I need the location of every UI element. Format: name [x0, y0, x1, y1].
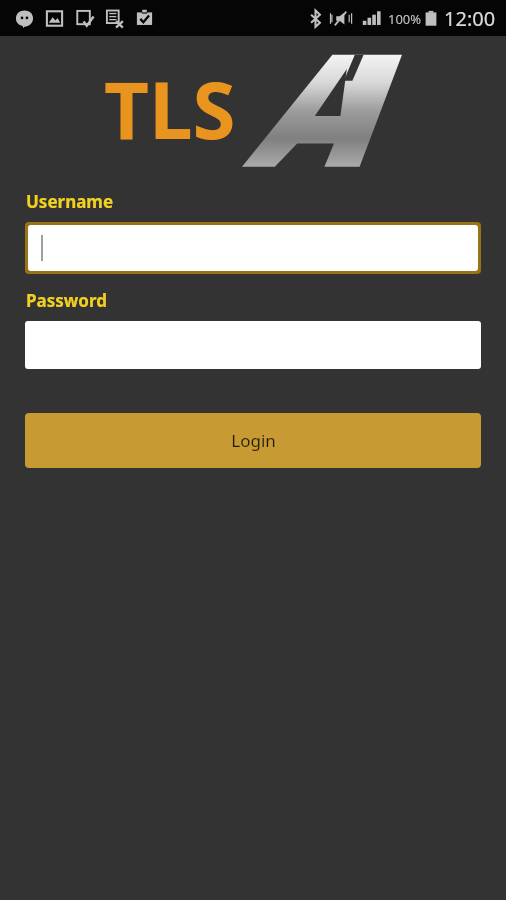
staticText: TLS: [104, 56, 236, 162]
staticText: 100%: [388, 10, 422, 28]
staticText: 12:00: [444, 5, 496, 32]
staticText: Password: [26, 289, 107, 312]
staticText: Username: [26, 190, 114, 213]
staticText: Login: [231, 429, 276, 452]
button[interactable]: Login: [25, 413, 481, 468]
button[interactable]: [28, 225, 478, 271]
